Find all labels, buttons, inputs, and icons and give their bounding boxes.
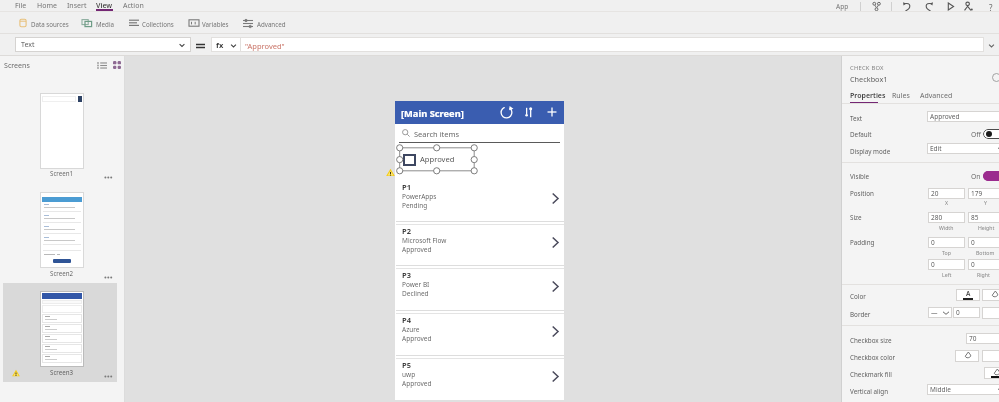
button[interactable]: Search items (395, 124, 564, 142)
button[interactable] (14, 13, 82, 33)
staticText: Home (37, 1, 57, 11)
staticText: 0 (931, 238, 935, 247)
button[interactable] (892, 91, 908, 107)
staticText: Border (850, 310, 871, 319)
staticText: Default (850, 130, 872, 139)
button[interactable] (15, 0, 27, 11)
button[interactable]: P5 (395, 355, 564, 400)
button[interactable]: Help (992, 73, 999, 82)
button[interactable]: List view (97, 62, 107, 69)
button[interactable] (37, 0, 57, 11)
button[interactable] (96, 0, 113, 11)
staticText: [Main Screen] (401, 107, 464, 120)
staticText: Position (850, 189, 874, 198)
button[interactable]: Edit (927, 143, 999, 154)
button[interactable]: App (836, 2, 849, 11)
button[interactable]: fx (211, 37, 240, 52)
staticText: Checkbox size (850, 336, 892, 345)
button[interactable]: Color (982, 307, 999, 319)
button[interactable]: Approved (927, 111, 999, 122)
button[interactable] (67, 0, 85, 11)
staticText: Middle (930, 385, 951, 394)
staticText: Action (123, 1, 144, 11)
button[interactable]: Middle (927, 384, 999, 395)
button[interactable]: 70 (966, 333, 999, 344)
other: Open details (552, 281, 559, 292)
staticText: Insert (67, 1, 87, 11)
button[interactable]: 179 (968, 188, 999, 199)
button[interactable]: Help (986, 1, 997, 12)
button[interactable]: P1 (395, 177, 564, 222)
button[interactable]: Connections (871, 1, 882, 12)
button[interactable]: 85 (968, 212, 999, 223)
staticText: Advanced (920, 91, 953, 101)
staticText: P3 (402, 270, 411, 280)
other: Open details (552, 371, 559, 382)
button[interactable]: Color (982, 289, 999, 301)
button[interactable] (850, 91, 878, 107)
staticText: 0 (971, 260, 975, 269)
button[interactable]: Add (545, 105, 559, 119)
button[interactable]: Text (15, 37, 191, 52)
staticText: Checkbox1 (850, 74, 888, 84)
button[interactable]: 0 (968, 237, 999, 248)
button[interactable]: More options (104, 175, 114, 180)
staticText: Collections (142, 20, 174, 28)
button[interactable]: 0 (953, 307, 980, 318)
button[interactable]: Refresh (499, 105, 514, 120)
button[interactable]: — (928, 307, 952, 318)
button[interactable] (403, 154, 416, 166)
button[interactable] (78, 13, 120, 33)
button[interactable]: Undo (902, 1, 913, 12)
button[interactable] (239, 13, 292, 33)
staticText: Text (850, 114, 863, 123)
staticText: 179 (971, 189, 983, 198)
staticText: Width (939, 224, 954, 231)
button[interactable]: Color (956, 289, 980, 301)
button[interactable]: 280 (928, 212, 965, 223)
button[interactable] (920, 91, 947, 107)
staticText: 0 (971, 238, 975, 247)
staticText: P5 (402, 360, 411, 370)
staticText: Approved (930, 112, 960, 121)
button[interactable]: Grid view (113, 61, 121, 69)
staticText: CHECK BOX (850, 64, 884, 72)
button[interactable]: 0 (928, 259, 965, 270)
button[interactable] (3, 283, 117, 382)
staticText: 85 (971, 213, 979, 222)
button[interactable]: Share (963, 1, 974, 12)
button[interactable]: Toggle off (983, 129, 999, 139)
button[interactable] (185, 13, 241, 33)
button[interactable] (123, 0, 144, 11)
button[interactable]: 20 (928, 188, 965, 199)
staticText: Data sources (31, 20, 69, 28)
button[interactable]: P4 (395, 310, 564, 355)
staticText: Top (942, 249, 951, 256)
button[interactable]: Toggle on (983, 171, 999, 181)
staticText: "Approved" (245, 41, 285, 51)
button[interactable]: Redo (923, 1, 934, 12)
button[interactable]: More options (104, 374, 114, 379)
staticText: 0 (956, 308, 960, 317)
button[interactable]: Sort (522, 105, 536, 119)
button[interactable]: P3 (395, 265, 564, 310)
button[interactable] (40, 93, 84, 169)
staticText: uwp (402, 370, 416, 379)
button[interactable]: P2 (395, 221, 564, 266)
staticText: Variables (202, 20, 229, 28)
button[interactable]: Color (984, 367, 999, 379)
button[interactable]: 0 (928, 237, 965, 248)
staticText: Text (21, 40, 35, 50)
staticText: Checkbox color (850, 353, 896, 362)
button[interactable] (40, 291, 84, 367)
staticText: PowerApps (402, 192, 437, 201)
button[interactable]: Color (955, 350, 979, 362)
staticText: Edit (930, 144, 942, 153)
button[interactable]: 0 (968, 259, 999, 270)
button[interactable]: Color (982, 350, 999, 362)
button[interactable] (125, 13, 189, 33)
button[interactable]: More options (104, 275, 114, 280)
button[interactable] (40, 192, 84, 268)
staticText: Declined (402, 289, 429, 298)
button[interactable]: Preview app (945, 1, 956, 12)
